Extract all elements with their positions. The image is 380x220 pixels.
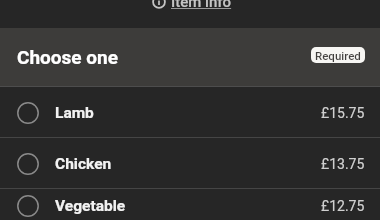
staticText: £12.75 [321, 198, 365, 214]
staticText: Lamb [55, 104, 94, 122]
button[interactable]: Chicken [0, 138, 380, 188]
other: Item info [152, 0, 166, 9]
staticText: £15.75 [321, 105, 365, 121]
button[interactable]: Item info [152, 0, 232, 11]
button[interactable]: Vegetable [0, 189, 380, 220]
staticText: Choose one [17, 46, 119, 68]
staticText: Vegetable [55, 197, 126, 215]
staticText: Item info [171, 0, 232, 11]
staticText: Required [315, 49, 361, 62]
staticText: £13.75 [321, 156, 365, 172]
button[interactable]: Lamb [0, 87, 380, 137]
staticText: Chicken [55, 155, 112, 173]
button[interactable]: Required [311, 47, 365, 63]
